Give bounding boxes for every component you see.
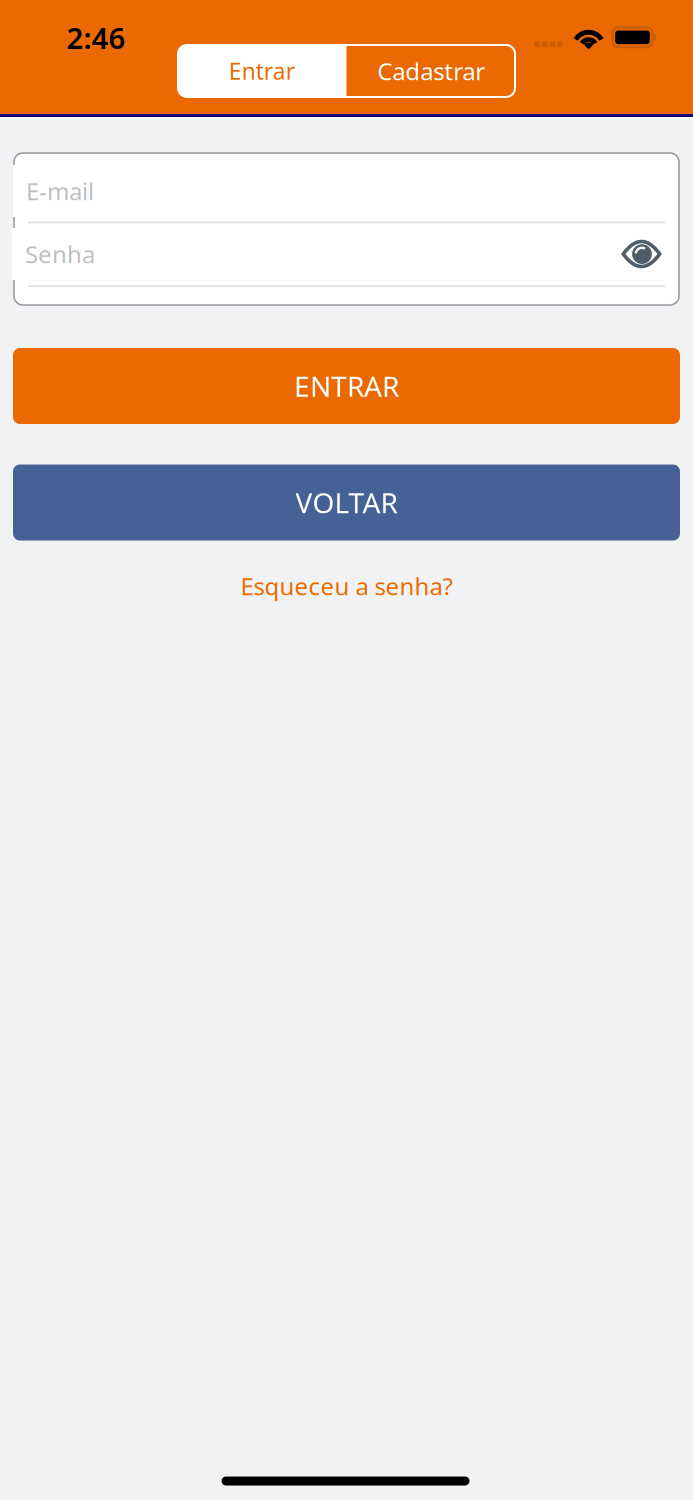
button[interactable]: Esqueceu a senha? [181, 564, 511, 608]
staticText: Cadastrar [377, 55, 485, 87]
staticText: ENTRAR [294, 367, 399, 405]
staticText: Esqueceu a senha? [240, 570, 452, 602]
staticText: VOLTAR [295, 484, 397, 521]
staticText: Senha [25, 238, 95, 270]
button[interactable]: Cadastrar [346, 44, 516, 98]
staticText: Entrar [229, 56, 295, 86]
button[interactable]: ENTRAR [13, 348, 680, 424]
button[interactable]: Entrar [177, 44, 346, 98]
button[interactable]: VOLTAR [13, 464, 680, 540]
staticText: 2:46 [66, 18, 125, 57]
button[interactable]: E-mail [13, 165, 650, 217]
staticText: E-mail [26, 175, 94, 207]
button[interactable]: Senha [12, 228, 592, 280]
button[interactable]: Mostrar senha [613, 230, 669, 278]
